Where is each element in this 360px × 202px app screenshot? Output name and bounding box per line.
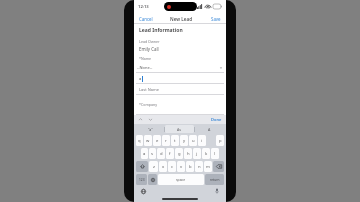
staticText: Lead Information: [139, 27, 183, 34]
button[interactable]: Next field: [147, 116, 154, 123]
button[interactable]: Shift: [136, 161, 148, 172]
staticText: j: [196, 151, 198, 157]
button[interactable]: --None--: [134, 62, 226, 73]
staticText: r: [165, 138, 167, 144]
staticText: *Name: [139, 56, 152, 61]
staticText: Emily Call: [139, 46, 159, 52]
staticText: b: [189, 164, 192, 170]
button[interactable]: w: [144, 135, 152, 146]
staticText: c: [171, 164, 174, 170]
staticText: return: [210, 178, 220, 182]
button[interactable]: i: [198, 135, 206, 146]
button[interactable]: f: [166, 148, 174, 159]
button[interactable]: Done: [210, 117, 223, 122]
button[interactable]: x: [159, 161, 167, 172]
button[interactable]: h: [184, 148, 192, 159]
button[interactable]: e: [153, 135, 161, 146]
staticText: 123: [139, 178, 145, 182]
staticText: Cancel: [139, 16, 153, 22]
button[interactable]: A: [195, 125, 224, 133]
staticText: a: [143, 151, 146, 157]
button[interactable]: 123: [136, 174, 147, 185]
staticText: p: [219, 138, 222, 144]
button[interactable]: c: [168, 161, 176, 172]
button[interactable]: g: [175, 148, 183, 159]
staticText: l: [214, 151, 216, 157]
button[interactable]: a: [134, 73, 226, 84]
button[interactable]: [134, 108, 226, 115]
button[interactable]: q: [136, 135, 143, 146]
staticText: g: [178, 151, 181, 157]
button[interactable]: b: [186, 161, 194, 172]
button[interactable]: d: [157, 148, 165, 159]
staticText: New Lead: [170, 16, 193, 22]
staticText: w: [146, 138, 150, 144]
staticText: space: [176, 177, 186, 182]
staticText: Save: [211, 16, 221, 22]
button[interactable]: n: [195, 161, 203, 172]
staticText: x: [162, 164, 165, 170]
button[interactable]: s: [149, 148, 156, 159]
button[interactable]: r: [162, 135, 170, 146]
button[interactable]: Last Name: [134, 84, 226, 95]
staticText: n: [198, 164, 201, 170]
button[interactable]: Emoji keyboard: [140, 188, 146, 194]
button[interactable]: "a": [136, 125, 164, 133]
button[interactable]: l: [211, 148, 219, 159]
staticText: *Company: [139, 102, 158, 107]
button[interactable]: Backspace: [213, 161, 224, 172]
staticText: u: [192, 138, 195, 144]
staticText: Lead Owner: [139, 39, 160, 44]
staticText: y: [183, 138, 186, 144]
staticText: --None--: [137, 65, 153, 70]
button[interactable]: m: [204, 161, 212, 172]
staticText: h: [187, 151, 190, 157]
staticText: m: [206, 164, 210, 170]
button[interactable]: p: [216, 135, 224, 146]
staticText: Last Name: [139, 87, 160, 92]
staticText: f: [169, 151, 171, 157]
button[interactable]: t: [171, 135, 179, 146]
staticText: i: [201, 138, 203, 144]
button[interactable]: k: [202, 148, 210, 159]
button[interactable]: return: [205, 174, 224, 185]
button[interactable]: y: [180, 135, 188, 146]
staticText: q: [138, 138, 141, 144]
button[interactable]: j: [193, 148, 201, 159]
staticText: A: [208, 127, 211, 132]
button[interactable]: As: [165, 125, 194, 133]
button[interactable]: Cancel: [138, 15, 154, 23]
staticText: v: [180, 164, 183, 170]
staticText: 12:13: [138, 4, 149, 10]
button[interactable]: a: [141, 148, 148, 159]
staticText: "a": [148, 127, 153, 132]
staticText: Done: [211, 117, 222, 122]
staticText: e: [156, 138, 159, 144]
button[interactable]: Previous field: [137, 116, 144, 123]
button[interactable]: u: [189, 135, 197, 146]
button[interactable]: space: [158, 174, 204, 185]
button[interactable]: Emoji: [148, 174, 157, 185]
button[interactable]: Save: [210, 15, 222, 23]
staticText: z: [153, 164, 155, 170]
button[interactable]: Dictation: [214, 188, 220, 194]
staticText: a: [139, 76, 142, 82]
staticText: t: [174, 138, 176, 144]
button[interactable]: z: [149, 161, 158, 172]
staticText: k: [205, 151, 208, 157]
staticText: d: [160, 151, 163, 157]
staticText: s: [151, 151, 154, 157]
staticText: As: [177, 127, 182, 132]
button[interactable]: v: [177, 161, 185, 172]
